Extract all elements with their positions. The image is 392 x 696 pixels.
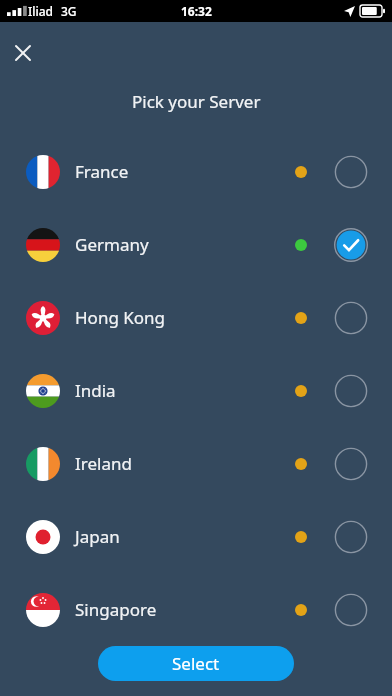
button[interactable]: Ireland: [0, 427, 392, 500]
staticText: Germany: [75, 233, 149, 256]
staticText: France: [75, 160, 129, 183]
staticText: Ireland: [75, 452, 132, 475]
button[interactable]: Germany: [0, 208, 392, 281]
button[interactable]: India: [0, 354, 392, 427]
staticText: Japan: [75, 525, 120, 548]
button[interactable]: Hong Kong: [0, 281, 392, 354]
staticText: Select: [172, 652, 220, 675]
button[interactable]: France: [0, 135, 392, 208]
button[interactable]: Japan: [0, 500, 392, 573]
staticText: Hong Kong: [75, 306, 166, 329]
staticText: 3G: [61, 3, 77, 19]
staticText: India: [75, 379, 116, 402]
staticText: Pick your Server: [132, 90, 261, 113]
staticText: Singapore: [75, 598, 157, 621]
button[interactable]: Singapore: [0, 573, 392, 646]
staticText: Iliad: [28, 3, 54, 19]
button[interactable]: Close: [6, 36, 40, 70]
button[interactable]: Select: [98, 646, 294, 681]
staticText: 16:32: [181, 3, 212, 19]
